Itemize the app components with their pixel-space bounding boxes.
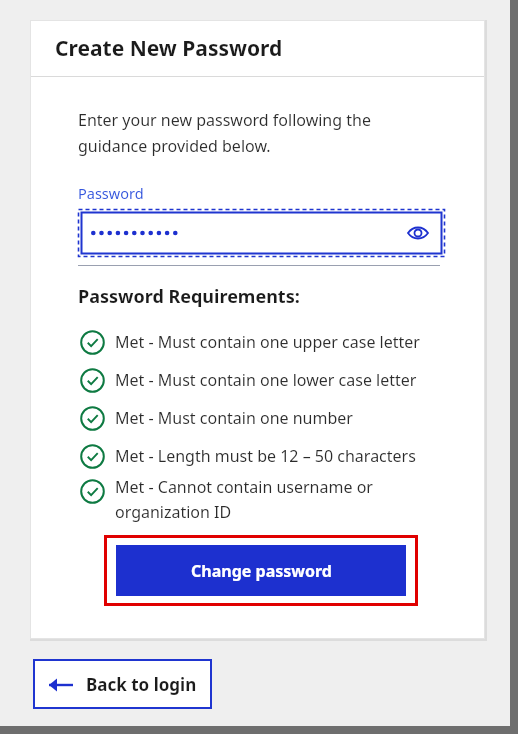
button[interactable]: Change password: [116, 545, 406, 596]
staticText: Met - Must contain one lower case letter: [115, 369, 417, 391]
staticText: Enter your new password following the gu…: [78, 109, 371, 157]
button[interactable]: Back to login: [33, 659, 212, 709]
staticText: Password: [78, 183, 144, 203]
staticText: Back to login: [86, 673, 197, 696]
staticText: Create New Password: [55, 34, 283, 63]
staticText: Change password: [191, 560, 332, 582]
button[interactable]: Met - Length must be 12 – 50 characters: [80, 437, 469, 475]
button[interactable]: Met - Must contain one lower case letter: [80, 361, 469, 399]
staticText: Met - Length must be 12 – 50 characters: [115, 445, 416, 467]
button[interactable]: Met - Cannot contain username or organiz…: [80, 475, 469, 529]
button[interactable]: Met - Must contain one upper case letter: [80, 323, 469, 361]
button[interactable]: Met - Must contain one number: [80, 399, 469, 437]
button[interactable]: Show password: [405, 220, 431, 246]
staticText: Met - Must contain one number: [115, 407, 353, 429]
staticText: Met - Must contain one upper case letter: [115, 331, 420, 353]
staticText: Password Requirements:: [78, 284, 300, 309]
staticText: Met - Cannot contain username or organiz…: [115, 476, 373, 522]
button[interactable]: Show password: [78, 209, 445, 257]
